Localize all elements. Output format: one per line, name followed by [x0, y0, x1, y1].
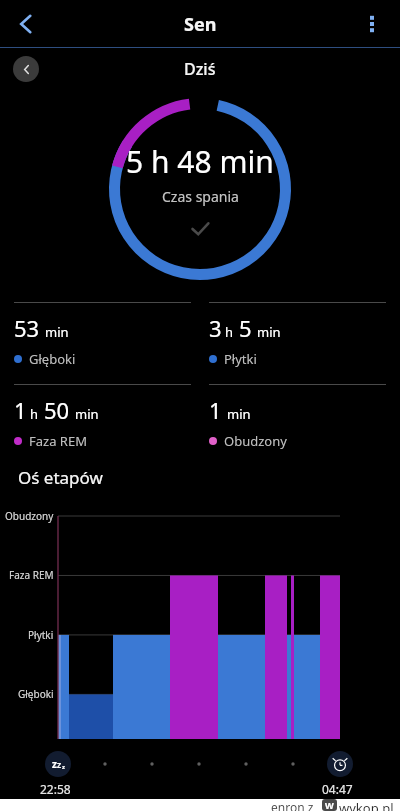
- button[interactable]: Previous day: [13, 56, 39, 82]
- staticText: min: [75, 405, 99, 423]
- button[interactable]: More options: [350, 2, 394, 46]
- staticText: 5: [239, 313, 252, 343]
- staticText: Płytki: [224, 350, 257, 368]
- staticText: 5 h 48 min: [126, 141, 274, 182]
- staticText: min: [45, 323, 69, 341]
- staticText: Z: [57, 761, 62, 771]
- staticText: z: [62, 763, 65, 771]
- staticText: 04:47: [322, 781, 353, 797]
- staticText: 3: [209, 313, 222, 343]
- staticText: 53: [14, 313, 40, 343]
- staticText: Oś etapów: [18, 466, 103, 489]
- staticText: Sen: [184, 12, 217, 37]
- button[interactable]: 3: [209, 302, 386, 368]
- button[interactable]: Wake time: [327, 751, 353, 777]
- staticText: Faza REM: [9, 568, 54, 582]
- staticText: 1: [209, 395, 222, 425]
- staticText: enron z: [271, 799, 314, 811]
- staticText: 22:58: [40, 781, 71, 797]
- staticText: Płytki: [28, 628, 54, 642]
- button[interactable]: 1: [14, 384, 191, 450]
- staticText: W: [325, 799, 334, 811]
- staticText: wykop.pl: [339, 799, 394, 811]
- button[interactable]: Back: [4, 2, 48, 46]
- staticText: Obudzony: [5, 509, 54, 523]
- staticText: h: [30, 405, 39, 423]
- staticText: min: [257, 323, 281, 341]
- staticText: Obudzony: [224, 432, 287, 450]
- staticText: z: [52, 757, 57, 771]
- staticText: Głęboki: [29, 350, 76, 368]
- staticText: 50: [44, 395, 70, 425]
- button[interactable]: Sleep start: [45, 751, 71, 777]
- button[interactable]: 53: [14, 302, 191, 368]
- staticText: 1: [14, 395, 27, 425]
- staticText: Dziś: [184, 58, 216, 80]
- staticText: Faza REM: [29, 432, 87, 450]
- staticText: h: [225, 323, 234, 341]
- staticText: Czas spania: [162, 187, 239, 206]
- staticText: Głęboki: [18, 687, 54, 701]
- staticText: min: [227, 405, 251, 423]
- button[interactable]: 1: [209, 384, 386, 450]
